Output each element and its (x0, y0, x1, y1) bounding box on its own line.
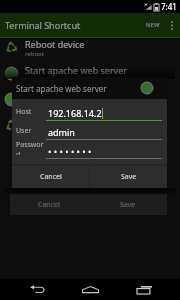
staticText: NEW (146, 21, 160, 29)
staticText: Password (16, 140, 46, 155)
button[interactable]: More options (163, 13, 180, 37)
staticText: Save (120, 200, 136, 210)
button[interactable]: Home (73, 279, 107, 300)
button[interactable]: Start apache web server (0, 64, 180, 90)
button[interactable]: Cancel (12, 166, 89, 188)
staticText: apachectl start (25, 102, 67, 110)
staticText: Cancel (38, 200, 60, 210)
button[interactable]: Reboot device (0, 116, 180, 142)
staticText: 192.168.14.2 (48, 107, 102, 119)
staticText: reboot (25, 50, 44, 58)
staticText: • • • • • • • • (48, 145, 92, 157)
staticText: reboot (25, 128, 44, 136)
button[interactable]: Back (20, 279, 54, 300)
staticText: 7:41 (161, 1, 177, 12)
staticText: Start apache web server (25, 64, 127, 76)
staticText: Cancel (40, 172, 62, 182)
staticText: Host (16, 107, 32, 117)
staticText: User (16, 126, 32, 136)
button[interactable]: NEW (143, 15, 163, 35)
staticText: Reboot device (25, 116, 85, 128)
staticText: Save (121, 172, 137, 182)
button[interactable]: Reboot device (0, 38, 180, 64)
staticText: Start apache web server (16, 83, 107, 94)
staticText: Terminal Shortcut (5, 19, 81, 31)
button[interactable]: Recents (127, 279, 161, 300)
staticText: admin (48, 126, 75, 138)
staticText: Start apache web server (25, 90, 127, 102)
staticText: Reboot device (25, 38, 85, 50)
button[interactable]: Start apache web server (0, 90, 180, 116)
button[interactable]: Save (90, 166, 167, 188)
